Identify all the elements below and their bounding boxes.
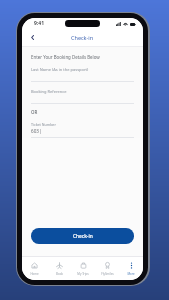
staticText: Ticket Number — [31, 122, 56, 127]
staticText: 603| — [31, 128, 42, 134]
staticText: Book — [56, 272, 63, 276]
button[interactable]: Check-in — [31, 228, 134, 244]
staticText: My Trips — [77, 272, 89, 276]
staticText: Check-in — [73, 233, 93, 240]
staticText: OR — [31, 109, 38, 115]
button[interactable]: More — [119, 257, 143, 280]
staticText: 9:41 — [34, 20, 44, 27]
staticText: Booking Reference — [31, 89, 67, 94]
staticText: Check-in — [71, 34, 94, 41]
button[interactable]: Home — [22, 257, 47, 280]
staticText: Last Name (As in the passport) — [31, 67, 89, 72]
button[interactable]: Back — [26, 31, 38, 43]
staticText: FlySmiles — [101, 272, 114, 276]
button[interactable]: Book — [47, 257, 71, 280]
button[interactable]: FlySmiles — [95, 257, 119, 280]
staticText: Enter Your Booking Details Below — [31, 54, 100, 60]
staticText: More — [127, 272, 135, 276]
button[interactable]: My Trips — [71, 257, 95, 280]
staticText: Home — [30, 272, 39, 276]
